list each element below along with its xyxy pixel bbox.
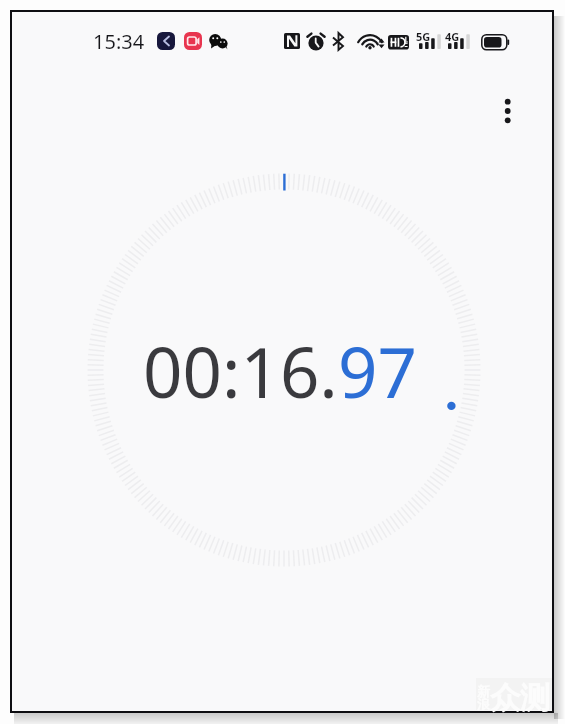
button[interactable]: More options	[484, 87, 532, 135]
staticText: 新 浪	[477, 683, 490, 713]
staticText: 众测	[490, 679, 550, 717]
staticText: 15:34	[93, 28, 145, 55]
staticText: 4G	[445, 29, 460, 44]
staticText: 00:16.	[143, 324, 338, 418]
staticText: 5G	[416, 29, 431, 44]
staticText: 97	[338, 324, 417, 418]
